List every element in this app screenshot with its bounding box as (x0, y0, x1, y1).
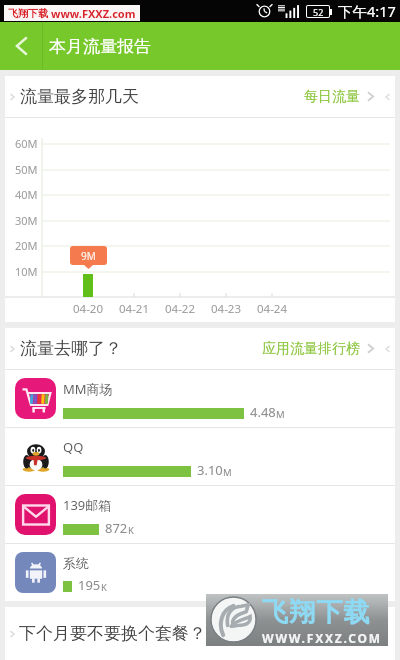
staticText: 本月流量报告 (49, 36, 151, 57)
staticText: 4.48 (250, 403, 276, 421)
button[interactable]: 应用流量排行榜 (5, 328, 395, 369)
staticText: 872 (105, 519, 128, 537)
staticText: 50M (15, 162, 38, 177)
staticText: QQ (63, 438, 84, 456)
staticText: M (223, 466, 232, 479)
staticText: 9M (81, 249, 96, 263)
staticText: 流量去哪了？ (20, 338, 122, 359)
staticText: K (128, 524, 134, 537)
staticText: 3.10 (197, 461, 223, 479)
staticText: 系统 (63, 555, 89, 571)
staticText: 04-22 (165, 301, 196, 317)
staticText: 04-23 (211, 301, 242, 317)
staticText: 10M (15, 264, 38, 279)
staticText: 195 (78, 576, 101, 594)
staticText: 04-24 (257, 301, 288, 317)
button[interactable]: QQ (5, 428, 395, 485)
staticText: www.FXXZ.com (51, 6, 136, 21)
staticText: 飞翔下载 (262, 596, 371, 629)
staticText: 04-20 (73, 301, 104, 317)
staticText: 下午4:17 (338, 1, 396, 21)
staticText: 飞翔下载 (8, 7, 48, 20)
staticText: 30M (15, 213, 38, 228)
staticText: 每日流量 (304, 88, 360, 106)
staticText: 应用流量排行榜 (262, 340, 360, 358)
staticText: 52 (313, 6, 324, 17)
staticText: 20M (15, 238, 38, 253)
staticText: 下个月要不要换个套餐？ (19, 623, 206, 644)
button[interactable]: 每日流量 (5, 76, 395, 117)
button[interactable]: 系统 (5, 544, 395, 601)
staticText: 60M (15, 136, 38, 151)
button[interactable]: 139邮箱 (5, 486, 395, 543)
staticText: WWW.FXXZ.COM (262, 630, 382, 646)
staticText: 流量最多那几天 (20, 86, 139, 107)
staticText: M (276, 408, 285, 421)
button[interactable]: MM商场 (5, 370, 395, 427)
staticText: MM商场 (63, 380, 113, 398)
staticText: 40M (15, 187, 38, 202)
staticText: 139邮箱 (63, 496, 112, 514)
staticText: 04-21 (119, 301, 150, 317)
button[interactable]: 下个月要不要换个套餐？ (5, 607, 395, 660)
staticText: K (101, 581, 107, 594)
button[interactable]: 返回 (0, 22, 42, 70)
